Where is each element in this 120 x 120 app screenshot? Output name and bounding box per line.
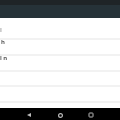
staticText: l n bbox=[0, 54, 8, 62]
button[interactable] bbox=[0, 103, 120, 120]
button[interactable]: Back bbox=[24, 110, 34, 120]
button[interactable]: l n bbox=[0, 56, 120, 72]
button[interactable] bbox=[0, 72, 120, 87]
button[interactable]: Recents bbox=[86, 110, 96, 120]
button[interactable]: l bbox=[0, 18, 120, 40]
staticText: h bbox=[1, 38, 5, 46]
button[interactable]: Home bbox=[55, 110, 65, 120]
button[interactable] bbox=[0, 87, 120, 103]
button[interactable]: h bbox=[0, 40, 120, 56]
staticText: l bbox=[0, 26, 2, 34]
